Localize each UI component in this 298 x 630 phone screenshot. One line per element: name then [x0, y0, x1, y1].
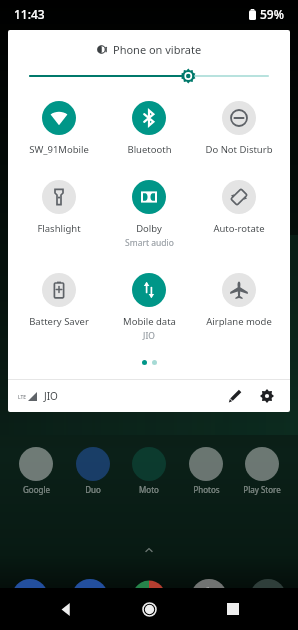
button[interactable]: SW_91Mobile — [14, 99, 104, 158]
button[interactable]: Settings — [254, 383, 280, 409]
staticText: Flashlight — [37, 222, 81, 235]
staticText: Google — [23, 484, 50, 495]
button[interactable]: Mobile data — [104, 271, 194, 344]
staticText: Airplane mode — [206, 315, 272, 328]
staticText: Mobile data — [123, 315, 176, 328]
button[interactable] — [72, 579, 108, 615]
staticText: JIO — [44, 389, 58, 403]
staticText: LTE — [18, 394, 27, 401]
button[interactable]: Home — [131, 591, 167, 627]
staticText: JIO — [143, 330, 155, 342]
staticText: Phone on vibrate — [113, 42, 202, 57]
button[interactable]: LTE — [18, 392, 37, 401]
button[interactable]: Flashlight — [14, 178, 104, 237]
staticText: Battery Saver — [29, 315, 89, 328]
button[interactable]: Airplane mode — [194, 271, 284, 330]
staticText: 11:43 — [14, 6, 45, 22]
button[interactable]: Brightness — [30, 67, 268, 85]
staticText: Photos — [193, 484, 220, 495]
button[interactable]: Recent apps — [215, 591, 251, 627]
button[interactable]: Bluetooth — [104, 99, 194, 158]
button[interactable]: Battery Saver — [14, 271, 104, 330]
button[interactable] — [12, 579, 48, 615]
staticText: Do Not Disturb — [205, 143, 273, 156]
button[interactable]: Dolby — [104, 178, 194, 251]
staticText: Play Store — [243, 484, 281, 495]
button[interactable]: Edit tiles — [222, 383, 248, 409]
button[interactable] — [191, 579, 227, 615]
button[interactable] — [250, 579, 286, 615]
staticText: Duo — [85, 484, 101, 495]
button[interactable]: Auto-rotate — [194, 178, 284, 237]
staticText: Dolby — [136, 222, 162, 235]
staticText: Smart audio — [125, 237, 174, 249]
staticText: JIO — [143, 615, 156, 627]
button[interactable]: Back — [48, 591, 84, 627]
button[interactable]: Do Not Disturb — [194, 99, 284, 158]
staticText: 59% — [260, 6, 284, 22]
staticText: SW_91Mobile — [29, 143, 89, 156]
staticText: Moto — [139, 484, 159, 495]
staticText: Auto-rotate — [213, 222, 265, 235]
staticText: Bluetooth — [127, 143, 172, 156]
